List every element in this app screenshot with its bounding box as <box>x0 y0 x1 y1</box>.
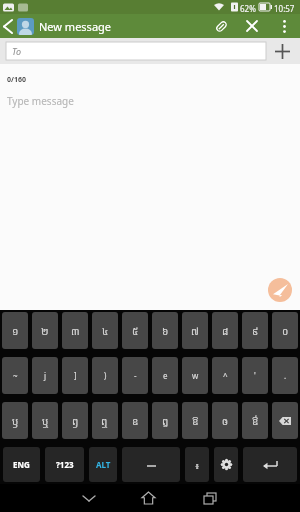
button[interactable] <box>209 14 233 38</box>
staticText: ឲ <box>222 414 228 428</box>
staticText: ៦ <box>162 324 169 338</box>
button[interactable] <box>214 447 238 482</box>
button[interactable]: ឮ <box>92 402 118 439</box>
staticText: New message <box>39 19 112 34</box>
staticText: . <box>284 370 287 381</box>
button[interactable]: ២ <box>32 312 58 349</box>
button[interactable]: ៨ <box>212 312 238 349</box>
button[interactable] <box>122 447 180 482</box>
button[interactable]: ឫ <box>2 402 28 439</box>
staticText: ' <box>254 370 256 381</box>
staticText: 0/160 <box>7 75 26 85</box>
button[interactable]: ៥ <box>122 312 148 349</box>
staticText: ឧ <box>132 414 139 428</box>
button[interactable]: ' <box>242 357 268 394</box>
button[interactable]: - <box>122 357 148 394</box>
staticText: ] <box>74 370 77 381</box>
button[interactable]: j <box>32 357 58 394</box>
staticText: ^ <box>223 370 228 381</box>
button[interactable]: . <box>272 357 298 394</box>
button[interactable]: ឰ <box>152 402 178 439</box>
button[interactable]: ?123 <box>45 447 84 482</box>
button[interactable]: To <box>6 42 266 60</box>
button[interactable] <box>272 402 298 439</box>
staticText: - <box>134 370 137 381</box>
button[interactable]: ឬ <box>32 402 58 439</box>
button[interactable]: ឱ <box>182 402 208 439</box>
button[interactable]: ៖ <box>185 447 209 482</box>
staticText: ឬ <box>42 414 49 428</box>
staticText: ៣ <box>71 324 80 338</box>
button[interactable]: ៦ <box>152 312 178 349</box>
staticText: To <box>12 45 21 57</box>
button[interactable] <box>240 14 264 38</box>
staticText: j <box>44 370 47 381</box>
staticText: ) <box>104 370 107 381</box>
button[interactable]: ១ <box>2 312 28 349</box>
staticText: ១ <box>12 324 19 338</box>
staticText: ៧ <box>191 324 199 338</box>
button[interactable] <box>275 14 293 38</box>
button[interactable]: ~ <box>2 357 28 394</box>
button[interactable]: ៩ <box>242 312 268 349</box>
staticText: ?123 <box>56 459 74 470</box>
staticText: 62% <box>240 3 256 14</box>
button[interactable]: ០ <box>272 312 298 349</box>
staticText: ~ <box>13 370 18 381</box>
staticText: ENG <box>13 459 30 470</box>
button[interactable]: ^ <box>212 357 238 394</box>
staticText: ឫ <box>12 414 19 428</box>
button[interactable]: e <box>152 357 178 394</box>
button[interactable]: ឲ <box>212 402 238 439</box>
button[interactable]: w <box>182 357 208 394</box>
staticText: ឮ <box>101 414 109 428</box>
button[interactable]: ឧ <box>122 402 148 439</box>
button[interactable]: ALT <box>89 447 117 482</box>
staticText: ៩ <box>252 324 259 338</box>
button[interactable] <box>75 484 103 512</box>
staticText: ៖ <box>195 459 200 471</box>
staticText: e <box>163 370 168 381</box>
staticText: w <box>192 370 199 381</box>
staticText: ៨ <box>222 324 229 338</box>
staticText: ឭ <box>72 414 79 428</box>
button[interactable]: ENG <box>3 447 40 482</box>
button[interactable] <box>134 484 162 512</box>
button[interactable] <box>17 18 34 35</box>
button[interactable] <box>270 39 294 63</box>
staticText: ០ <box>282 324 289 338</box>
staticText: ឱ <box>192 414 199 428</box>
button[interactable]: ឳ <box>242 402 268 439</box>
button[interactable]: ៤ <box>92 312 118 349</box>
button[interactable] <box>243 447 297 482</box>
staticText: Type message <box>7 94 74 108</box>
button[interactable]: ) <box>92 357 118 394</box>
button[interactable]: ៣ <box>62 312 88 349</box>
staticText: ៥ <box>132 324 139 338</box>
button[interactable]: ៧ <box>182 312 208 349</box>
button[interactable]: ឭ <box>62 402 88 439</box>
staticText: ALT <box>96 459 111 470</box>
staticText: ២ <box>41 324 49 338</box>
staticText: ឳ <box>252 414 259 428</box>
button[interactable] <box>196 484 224 512</box>
button[interactable] <box>268 278 292 302</box>
button[interactable] <box>0 14 16 38</box>
staticText: 10:57 <box>274 3 295 14</box>
button[interactable]: ] <box>62 357 88 394</box>
staticText: ៤ <box>102 324 109 338</box>
staticText: ឰ <box>162 414 169 428</box>
